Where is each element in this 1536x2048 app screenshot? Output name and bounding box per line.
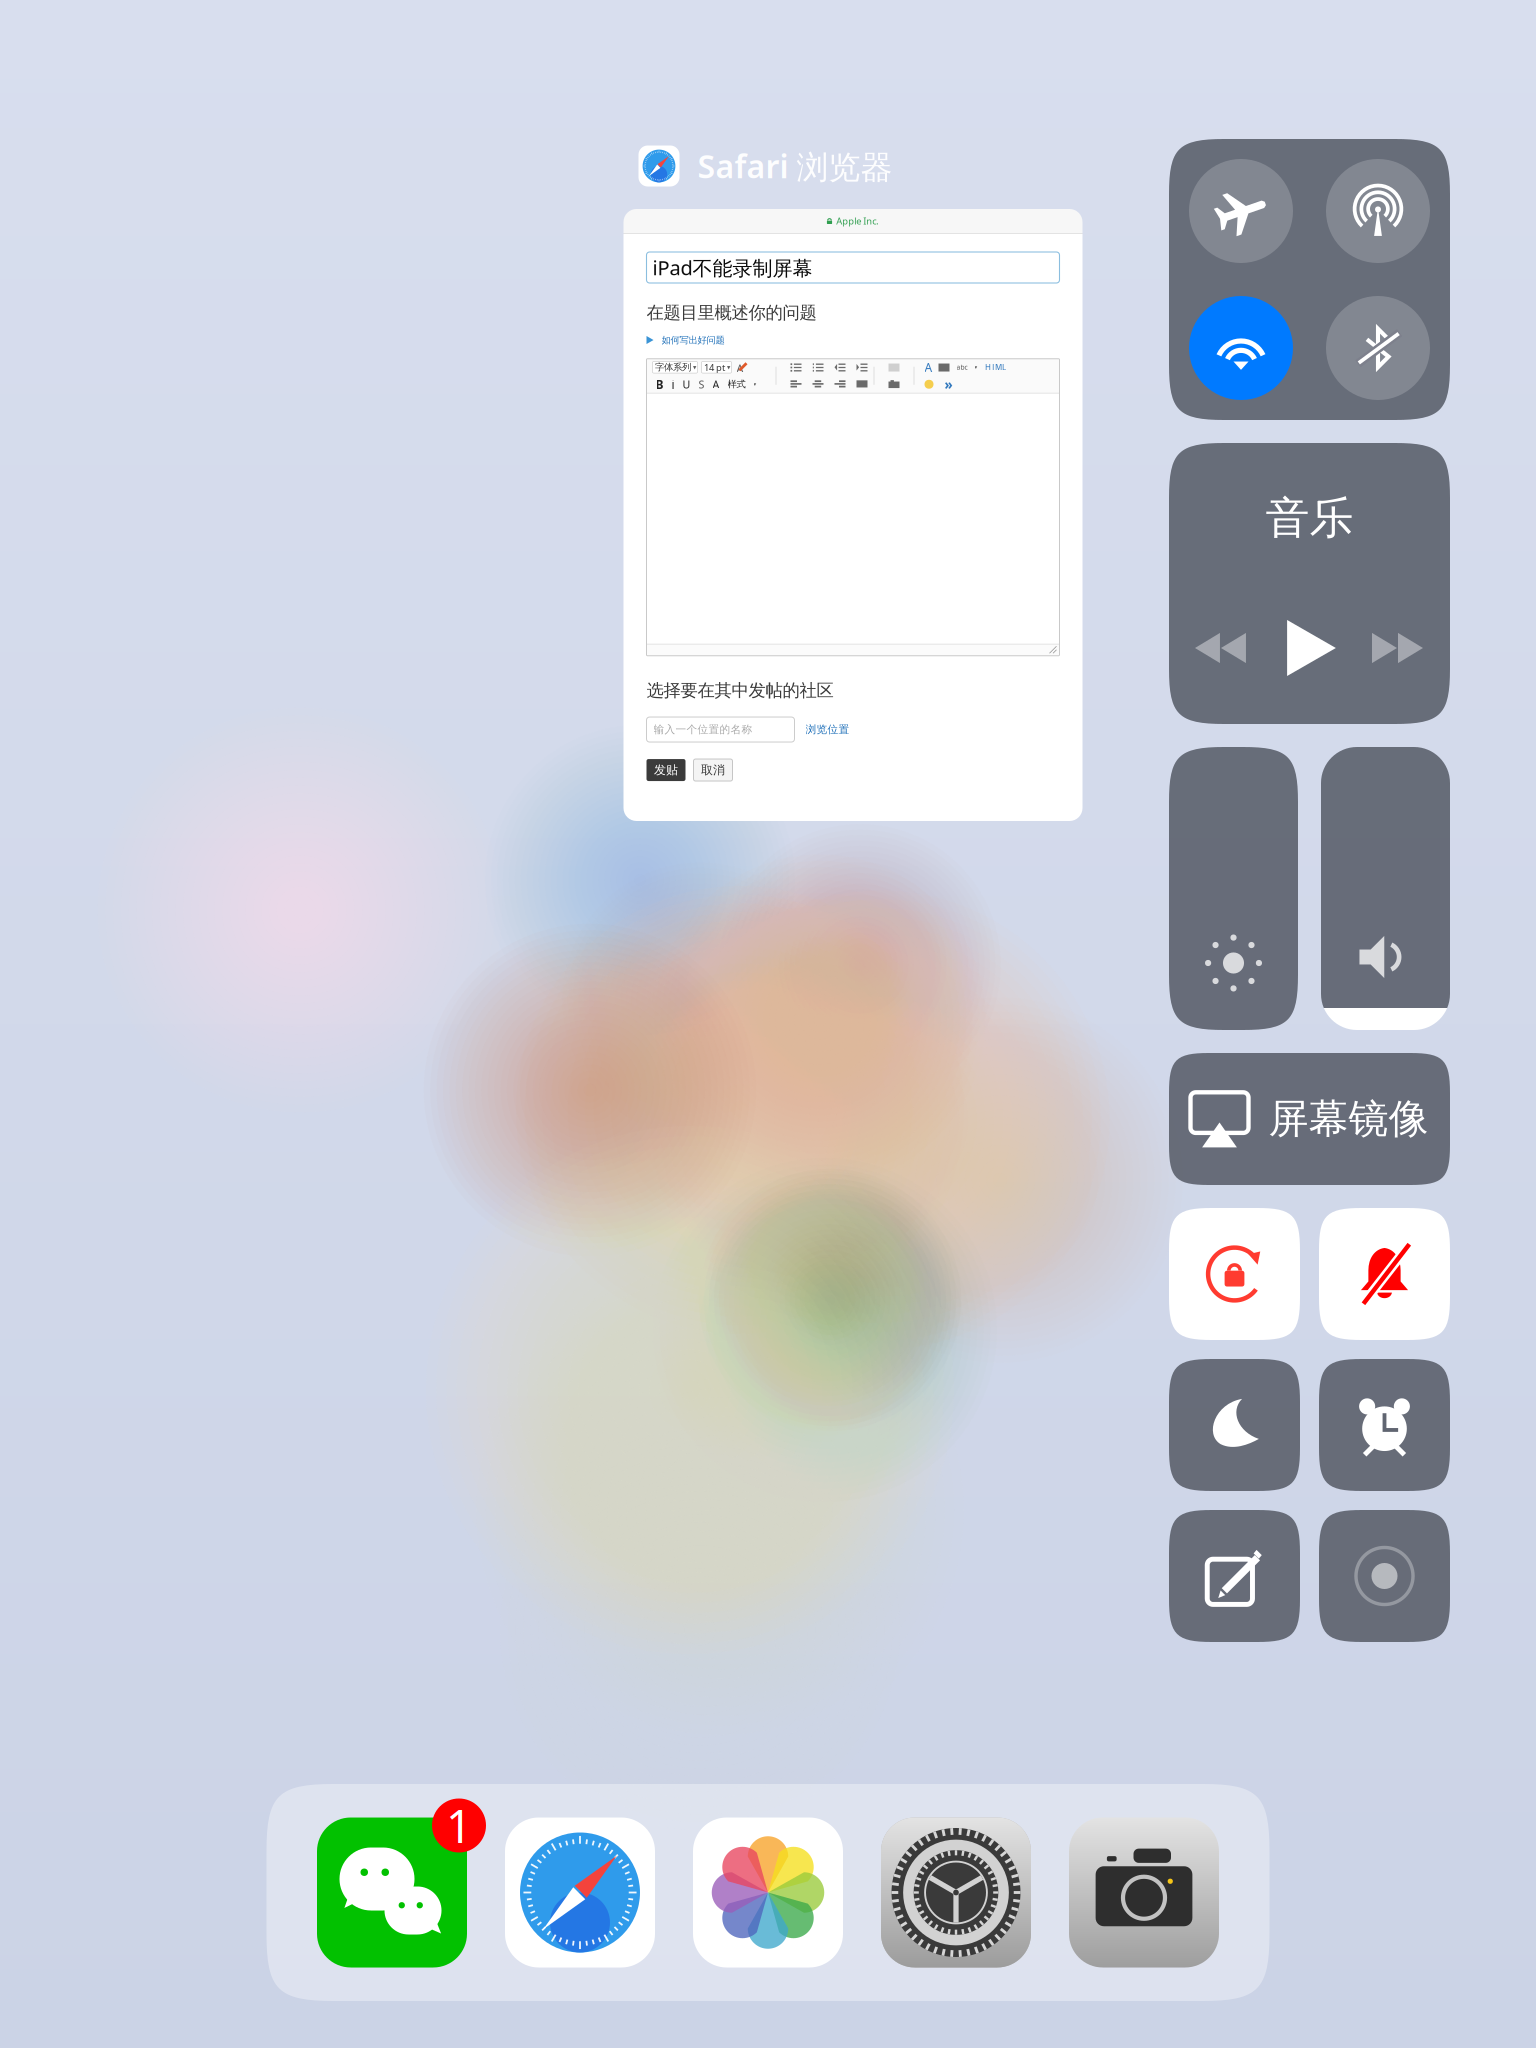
staticText: i [671,376,674,392]
staticText: 样式 [727,378,745,390]
staticText: B [655,376,663,392]
button[interactable]: Wi-Fi [1189,296,1293,400]
button[interactable]: 发贴 [646,759,685,781]
staticText: 音乐 [1265,491,1353,545]
staticText: 如何写出好问题 [661,334,724,346]
button[interactable]: Brightness [1169,747,1298,1030]
button[interactable]: Airplane Mode [1189,159,1293,263]
staticText: ▾ [974,364,977,370]
staticText: 14 pt [704,361,725,373]
staticText: ▾ [693,363,696,371]
staticText: 在题目里概述你的问题 [646,302,816,323]
button[interactable]: Volume [1321,747,1450,1030]
staticText: Apple Inc. [836,215,879,227]
staticText: 字体系列 [655,361,691,373]
button[interactable]: Screen Mirroring [1169,1053,1450,1185]
button[interactable]: Camera [1069,1817,1219,1967]
button[interactable]: Photos [693,1817,843,1967]
button[interactable]: Screen Recording [1319,1510,1450,1642]
staticText: 1 [446,1795,472,1856]
staticText: iPad不能录制屏幕 [652,254,812,281]
button[interactable]: Do Not Disturb [1169,1359,1300,1491]
staticText: ▾ [753,381,756,387]
button[interactable]: Bluetooth [1326,296,1430,400]
button[interactable]: Notes [1169,1510,1300,1642]
button[interactable]: Silent Mode [1319,1208,1450,1340]
staticText: 输入一个位置的名称 [653,723,752,736]
staticText: S [698,377,704,391]
staticText: 取消 [701,763,725,777]
staticText: HTML [985,362,1006,372]
staticText: 发贴 [654,763,678,777]
staticText: abc [956,363,967,372]
staticText: A [924,359,932,375]
staticText: 浏览位置 [805,723,849,736]
button[interactable]: Rotation Lock [1169,1208,1300,1340]
button[interactable]: Next [1372,622,1424,674]
staticText: A [712,377,719,391]
button[interactable]: Safari 浏览器 [623,209,1082,821]
button[interactable]: Previous [1195,622,1247,674]
staticText: U [682,377,690,391]
staticText: A [736,361,743,375]
button[interactable]: WeChat [317,1817,467,1967]
button[interactable]: Safari [505,1817,655,1967]
button[interactable]: AirDrop [1326,159,1430,263]
button[interactable]: Alarm [1319,1359,1450,1491]
button[interactable]: Play [1281,620,1337,676]
staticText: » [944,375,952,393]
button[interactable]: Settings [881,1817,1031,1967]
staticText: Safari 浏览器 [697,145,892,187]
button[interactable]: 浏览位置 [805,723,849,736]
staticText: ▾ [727,363,730,371]
button[interactable]: 取消 [693,759,732,781]
staticText: 选择要在其中发帖的社区 [646,680,833,701]
staticText: 屏幕镜像 [1268,1094,1428,1143]
